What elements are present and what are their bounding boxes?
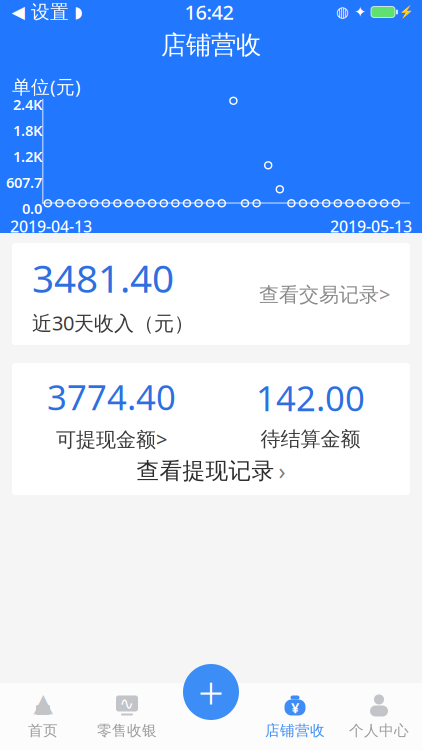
- staticText: ◀: [11, 2, 24, 22]
- staticText: 可提现金额>: [56, 426, 167, 452]
- button[interactable]: 个人中心: [337, 683, 421, 750]
- staticText: 首页: [28, 721, 58, 739]
- button[interactable]: ∿: [85, 683, 169, 750]
- staticText: 查看提现记录: [136, 457, 274, 485]
- staticText: ¥: [291, 698, 299, 717]
- staticText: ◍: [336, 4, 349, 20]
- staticText: 2019-04-13: [10, 216, 92, 237]
- staticText: 1.2K: [13, 147, 42, 166]
- staticText: 零售收银: [97, 721, 157, 739]
- staticText: 2.4K: [13, 95, 42, 114]
- staticText: 16:42: [184, 0, 233, 25]
- staticText: 142.00: [256, 375, 365, 421]
- staticText: 查看交易记录>: [259, 281, 390, 307]
- button[interactable]: 返回设置: [0, 0, 82, 23]
- staticText: 3481.40: [32, 252, 174, 303]
- staticText: 店铺营收: [265, 721, 325, 739]
- staticText: 607.7: [6, 173, 42, 192]
- staticText: 近30天收入（元）: [32, 309, 194, 336]
- button[interactable]: ¥: [253, 683, 337, 750]
- staticText: 设置: [31, 0, 69, 23]
- staticText: 3774.40: [47, 374, 176, 420]
- button[interactable]: ▲: [1, 683, 85, 750]
- staticText: 个人中心: [349, 721, 409, 739]
- staticText: 单位(元): [12, 74, 81, 99]
- staticText: ◗: [74, 3, 82, 21]
- button[interactable]: 新增: [180, 661, 242, 723]
- staticText: 待结算金额: [260, 427, 360, 451]
- staticText: 店铺营收: [161, 29, 261, 60]
- button[interactable]: 查看提现记录: [12, 449, 410, 493]
- button[interactable]: 3481.40: [12, 243, 410, 345]
- staticText: ∿: [119, 694, 134, 713]
- staticText: 1.8K: [13, 121, 42, 140]
- staticText: ▲: [33, 688, 52, 717]
- staticText: ⚡: [399, 5, 414, 19]
- staticText: ›: [278, 456, 285, 486]
- staticText: +: [198, 662, 224, 722]
- staticText: ✦: [354, 4, 366, 20]
- staticText: 0.0: [22, 199, 42, 218]
- button[interactable]: 3774.40: [12, 377, 211, 449]
- staticText: 2019-05-13: [330, 216, 412, 237]
